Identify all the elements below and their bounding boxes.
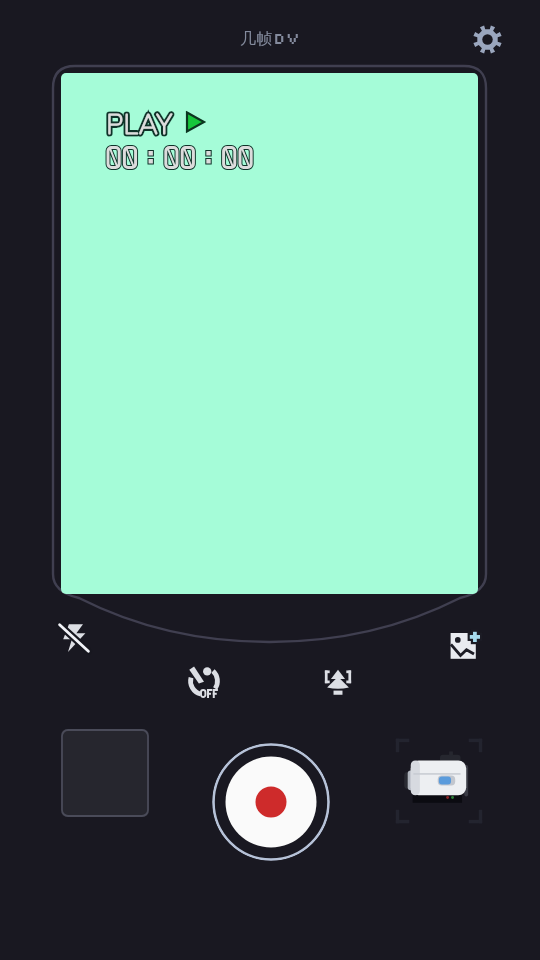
button[interactable]: Gallery (61, 729, 149, 817)
button[interactable]: Self timer off (179, 656, 229, 706)
button[interactable]: Scene mode (314, 657, 362, 705)
button[interactable]: Settings (465, 17, 509, 61)
button[interactable]: Flash off (50, 614, 98, 662)
button[interactable]: Add photo (441, 621, 489, 669)
button[interactable]: Record (212, 743, 330, 861)
staticText: 几帧DV (240, 28, 301, 49)
button[interactable]: Camcorder mode (394, 736, 484, 826)
